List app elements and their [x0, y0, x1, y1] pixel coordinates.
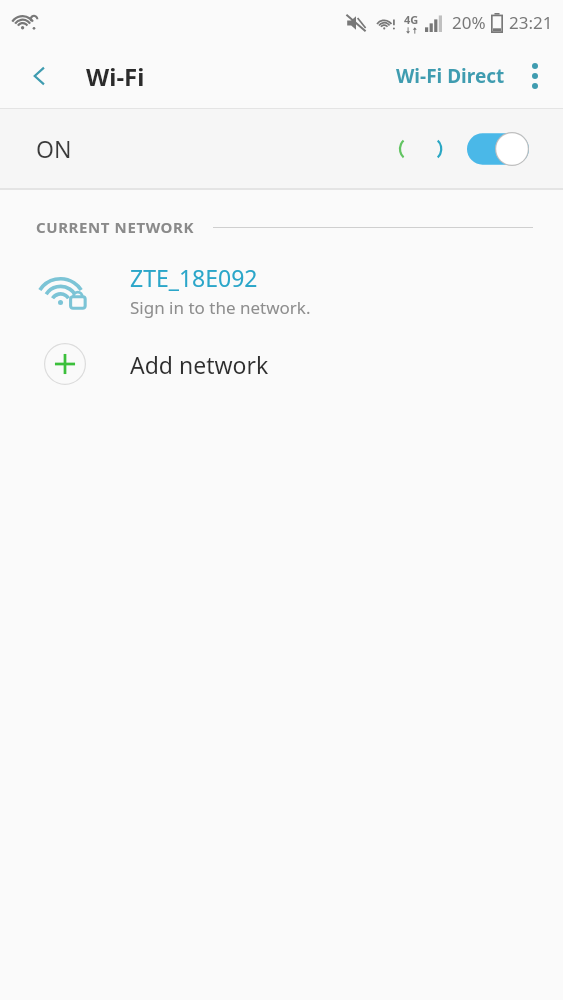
staticText: CURRENT NETWORK [36, 217, 195, 237]
button[interactable]: Add network [0, 328, 563, 400]
staticText: 20% [452, 11, 486, 34]
staticText: ZTE_18E092 [130, 262, 258, 293]
button[interactable]: Back [14, 50, 66, 102]
button[interactable]: Wi-Fi Direct [390, 53, 511, 99]
button[interactable]: Wi-Fi toggle [467, 132, 529, 166]
button[interactable]: More options [511, 52, 559, 100]
staticText: Wi-Fi [86, 60, 145, 93]
staticText: 4G [404, 12, 419, 27]
button[interactable]: ON [0, 109, 563, 188]
button[interactable]: ZTE_18E092 [0, 252, 563, 328]
staticText: 23:21 [509, 11, 553, 34]
staticText: ON [36, 133, 72, 164]
staticText: Wi-Fi Direct [396, 63, 505, 89]
staticText: Sign in to the network. [130, 296, 311, 319]
staticText: Add network [130, 349, 269, 380]
